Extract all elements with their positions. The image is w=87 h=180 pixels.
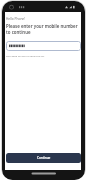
staticText: We'll send an OTP to verify this no. <box>6 54 45 57</box>
staticText: Continue <box>37 156 51 160</box>
staticText: Hello Phone! <box>6 17 26 21</box>
button[interactable] <box>6 41 81 51</box>
button[interactable]: Continue <box>6 153 81 163</box>
staticText: Please enter your mobile number <box>6 23 78 29</box>
staticText: to continue <box>6 29 31 35</box>
